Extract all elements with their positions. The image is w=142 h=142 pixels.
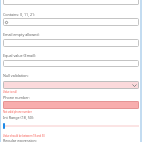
- button[interactable]: [3, 81, 139, 89]
- button[interactable]: [3, 0, 139, 5]
- staticText: Phone number:: [3, 95, 30, 100]
- staticText: Not valid phone number: [3, 110, 32, 114]
- staticText: Value is null: [3, 90, 17, 94]
- staticText: Email empty allowed:: [3, 32, 40, 37]
- staticText: Value should be between 18 and 50: [3, 134, 45, 138]
- button[interactable]: [3, 39, 139, 47]
- button[interactable]: [3, 60, 139, 67]
- staticText: Int Range (18, 50):: [3, 115, 34, 120]
- staticText: Regular expression:: [3, 138, 37, 142]
- button[interactable]: Range slider: [3, 123, 139, 129]
- button[interactable]: [3, 18, 139, 26]
- staticText: Equal value (Email):: [3, 53, 37, 58]
- button[interactable]: [3, 101, 139, 109]
- staticText: Contains: 0, 11, 21:: [3, 12, 36, 17]
- staticText: Null validation:: [3, 73, 29, 78]
